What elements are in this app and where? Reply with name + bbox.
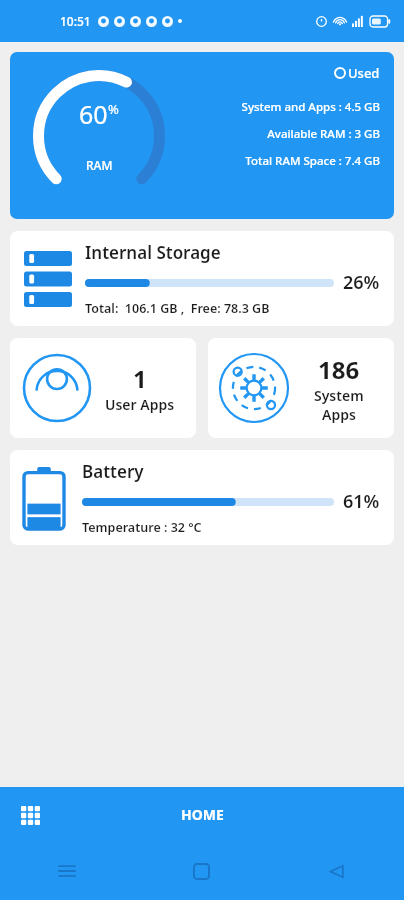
button[interactable]: Back xyxy=(269,842,404,900)
staticText: System and Apps : 4.5 GB xyxy=(241,99,380,115)
staticText: RAM xyxy=(86,157,113,173)
staticText: Internal Storage xyxy=(85,241,221,264)
staticText: Total RAM Space : 7.4 GB xyxy=(245,153,380,169)
button[interactable]: 1 xyxy=(10,338,196,438)
staticText: User Apps xyxy=(105,395,175,414)
staticText: HOME xyxy=(181,805,224,824)
staticText: 10:51 xyxy=(60,13,91,29)
staticText: 26% xyxy=(343,270,380,295)
button[interactable]: Internal Storage xyxy=(10,231,394,326)
button[interactable]: Battery xyxy=(10,450,394,545)
staticText: 61% xyxy=(343,489,380,514)
staticText: 1 xyxy=(133,362,147,395)
staticText: System xyxy=(314,386,364,405)
staticText: % xyxy=(108,100,119,118)
button[interactable]: Recent apps xyxy=(0,842,134,900)
button[interactable]: Home xyxy=(134,842,269,900)
button[interactable]: Apps xyxy=(10,795,50,835)
staticText: Total: 106.1 GB , Free: 78.3 GB xyxy=(85,300,270,317)
button[interactable]: 60 xyxy=(10,52,394,219)
staticText: Apps xyxy=(322,405,356,424)
staticText: Used xyxy=(348,64,380,82)
staticText: 186 xyxy=(318,353,360,386)
button[interactable]: HOME xyxy=(159,797,246,832)
staticText: Temperature : 32 °C xyxy=(82,519,202,536)
staticText: 60 xyxy=(79,97,108,131)
staticText: Battery xyxy=(82,460,144,483)
button[interactable]: 186 xyxy=(208,338,394,438)
staticText: Available RAM : 3 GB xyxy=(267,126,380,142)
